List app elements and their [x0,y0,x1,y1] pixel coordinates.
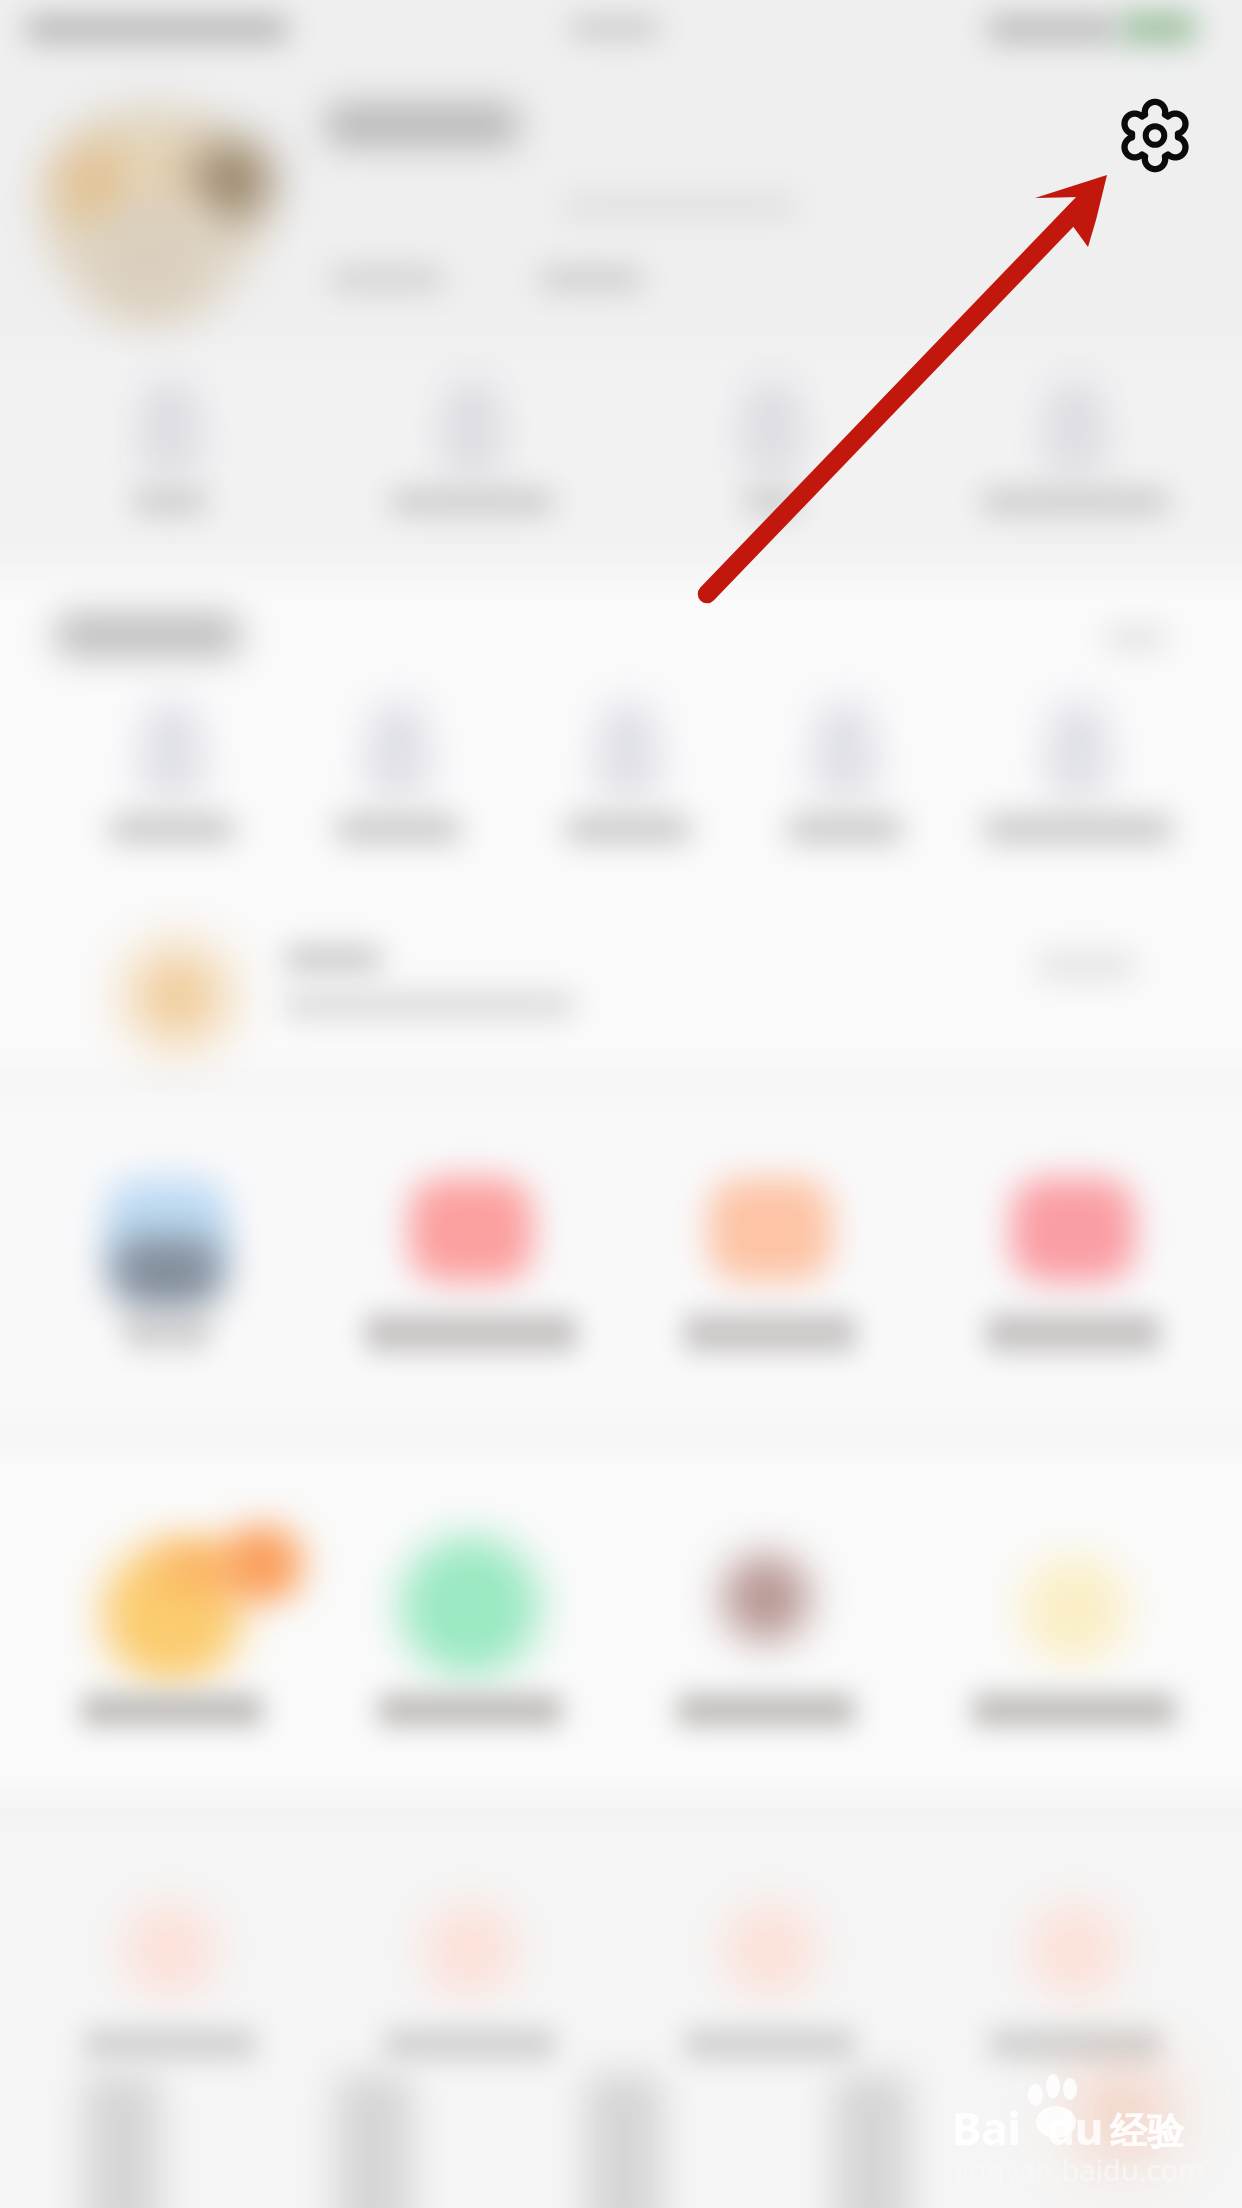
staticText: 经验 [1110,2108,1184,2155]
staticText: jingyan.baidu.com [954,2150,1206,2189]
button[interactable]: Settings [1110,90,1202,182]
staticText: du [1047,2098,1104,2158]
staticText: Bai [952,2098,1021,2158]
